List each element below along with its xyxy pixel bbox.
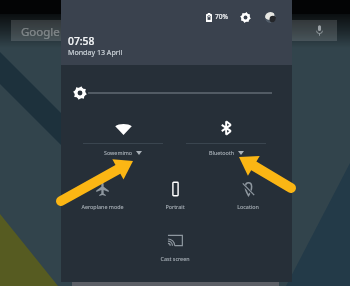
button[interactable]: Location	[212, 182, 284, 210]
button[interactable]: Wi-Fi	[83, 118, 163, 156]
other: Voice search	[315, 25, 324, 36]
staticText: 07:58	[68, 34, 95, 48]
button[interactable]: Cast screen	[139, 234, 211, 262]
staticText: Aeroplane mode	[81, 203, 124, 210]
button[interactable]: Portrait	[139, 182, 211, 210]
button[interactable]: Brightness	[73, 86, 87, 100]
button[interactable]: User profile	[265, 12, 276, 23]
staticText: Cast screen	[160, 255, 190, 262]
staticText: Monday 13 April	[68, 47, 123, 57]
button[interactable]: Aeroplane mode	[66, 182, 138, 210]
button[interactable]: Settings	[240, 12, 251, 23]
staticText: Sowemimo	[104, 149, 133, 156]
staticText: 70%	[215, 12, 229, 21]
button[interactable]: Bluetooth	[186, 118, 266, 156]
button[interactable]: Google	[11, 20, 337, 41]
staticText: Google	[21, 24, 60, 40]
staticText: Location	[237, 203, 259, 210]
staticText: Bluetooth	[209, 149, 235, 156]
staticText: Portrait	[165, 203, 185, 210]
